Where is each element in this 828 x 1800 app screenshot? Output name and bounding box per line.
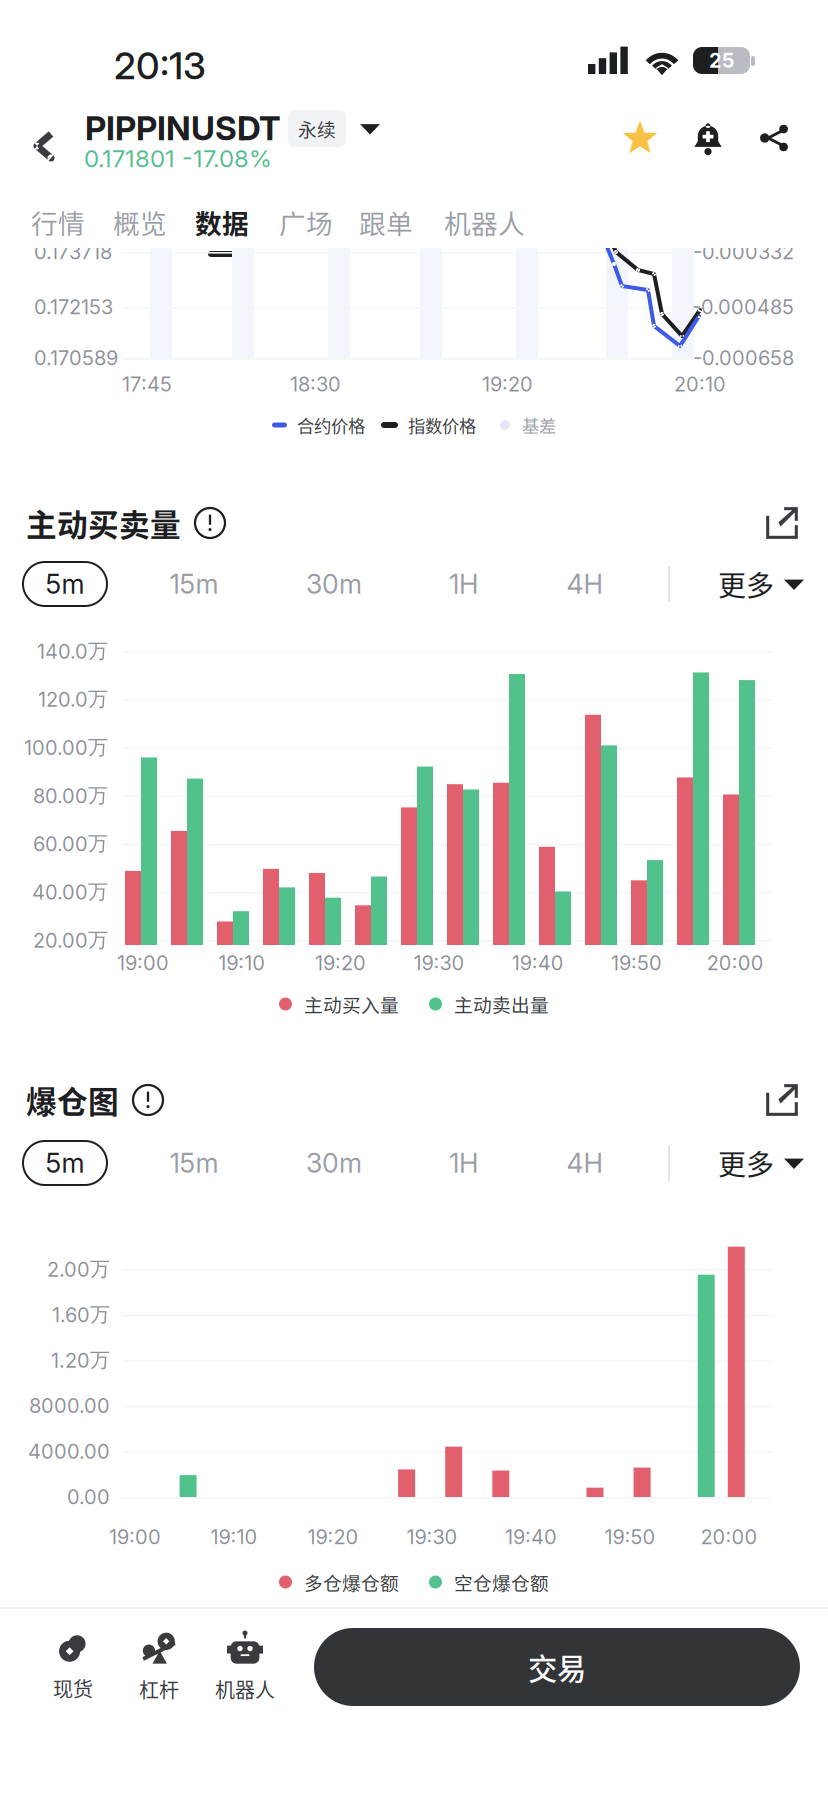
staticText: 80.00万 [33,783,108,808]
staticText: 19:30 [406,1525,457,1549]
staticText: 19:40 [512,951,564,975]
button[interactable]: 30m [292,1141,376,1185]
staticText: 19:20 [482,372,533,396]
staticText: 现货 [53,1673,93,1702]
staticText: 基差 [522,412,556,438]
button[interactable]: Share [738,104,810,172]
button[interactable]: Back [10,112,78,180]
staticText: 0.172153 [34,295,113,319]
staticText: 19:20 [315,951,366,975]
staticText: 19:00 [109,1525,161,1549]
staticText: 8000.00 [29,1394,110,1418]
button[interactable]: Info [119,1077,171,1123]
button[interactable]: 4H [543,1141,627,1185]
button[interactable]: 交易 [314,1628,800,1706]
staticText: 100.00万 [24,735,108,760]
staticText: 19:20 [307,1525,358,1549]
button[interactable]: 杠杆 [111,1628,207,1706]
staticText: 爆仓图 [26,1078,119,1122]
staticText: 4000.00 [28,1439,110,1463]
staticText: 多仓爆仓额 [304,1568,399,1595]
staticText: 更多 [718,564,774,604]
staticText: 30m [306,568,362,600]
button[interactable]: 1H [422,562,506,606]
staticText: -0.000485 [692,295,794,319]
staticText: 1.20万 [51,1348,110,1373]
button[interactable]: 更多 [706,562,816,606]
staticText: 概览 [113,203,167,241]
button[interactable]: 1H [422,1141,506,1185]
staticText: 更多 [718,1143,774,1183]
staticText: 19:50 [604,1525,655,1549]
staticText: 19:30 [414,951,465,975]
staticText: 4H [566,568,603,600]
button[interactable]: 广场 [269,200,343,261]
staticText: 永续 [298,115,336,142]
staticText: 20:00 [707,951,764,975]
staticText: 15m [169,568,218,600]
button[interactable]: 概览 [103,200,177,261]
staticText: 行情 [31,203,85,241]
button[interactable]: 15m [152,1141,236,1185]
staticText: 140.0万 [37,638,108,664]
staticText: 15m [169,1147,218,1179]
button[interactable]: 机器人 [434,200,535,261]
staticText: -0.000658 [693,346,794,370]
staticText: 交易 [528,1646,586,1688]
staticText: 5m [45,1147,84,1179]
staticText: 0.00 [67,1485,110,1509]
staticText: 1.60万 [52,1302,110,1327]
button[interactable]: 行情 [21,200,95,261]
staticText: 17:45 [122,372,172,396]
button[interactable]: 5m [23,562,107,606]
staticText: 19:10 [218,951,265,975]
staticText: 2.00万 [47,1256,110,1282]
staticText: 指数价格 [408,412,476,438]
button[interactable]: 现货 [25,1628,121,1706]
staticText: 40.00万 [32,879,108,904]
staticText: 25 [709,48,734,73]
button[interactable]: 15m [152,562,236,606]
staticText: 60.00万 [33,831,108,856]
button[interactable]: 跟单 [349,200,423,261]
staticText: 19:10 [210,1525,257,1549]
staticText: 19:40 [505,1525,557,1549]
staticText: 20.00万 [33,927,108,953]
button[interactable]: 机器人 [197,1628,293,1706]
staticText: 机器人 [215,1674,275,1703]
staticText: 19:00 [117,951,169,975]
staticText: 20:00 [700,1525,757,1549]
button[interactable]: 数据 [185,200,259,261]
staticText: 跟单 [359,203,413,241]
staticText: 主动卖出量 [454,990,549,1017]
button[interactable]: 4H [543,562,627,606]
staticText: 1H [449,1147,479,1179]
staticText: 杠杆 [139,1674,179,1703]
staticText: 18:30 [290,372,341,396]
staticText: 1H [449,568,479,600]
button[interactable]: Favourite [604,104,676,172]
staticText: 4H [566,1147,603,1179]
staticText: 主动买入量 [304,990,399,1017]
button[interactable]: 5m [23,1141,107,1185]
button[interactable]: Contract type [288,104,386,153]
staticText: PIPPINUSDT [85,108,281,148]
button[interactable]: Expand chart [750,495,804,551]
staticText: 合约价格 [297,412,365,438]
staticText: 5m [45,568,84,600]
staticText: 空仓爆仓额 [454,1568,549,1595]
staticText: 0.171801 -17.08% [84,144,272,173]
staticText: 主动买卖量 [26,501,181,545]
button[interactable]: 30m [292,562,376,606]
staticText: 20:10 [674,372,726,396]
staticText: 0.173718 [34,240,112,264]
staticText: 30m [306,1147,362,1179]
staticText: 120.0万 [38,687,108,712]
staticText: 20:13 [114,43,206,88]
button[interactable]: 更多 [706,1141,816,1185]
button[interactable]: Info [181,500,233,546]
staticText: 19:50 [611,951,662,975]
staticText: 0.170589 [34,346,118,370]
button[interactable]: Expand chart [750,1072,804,1128]
button[interactable]: Price alert [672,104,744,172]
